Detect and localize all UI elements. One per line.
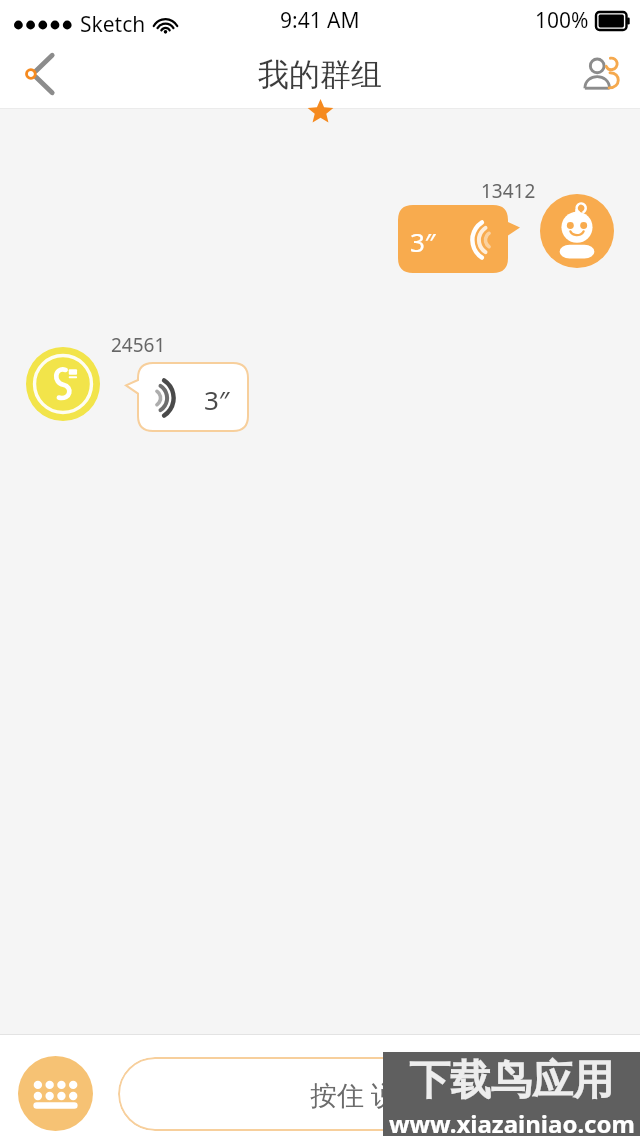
button[interactable]: Keyboard xyxy=(18,1056,93,1131)
button[interactable]: 按住 说话 xyxy=(118,1057,618,1131)
staticText: 13412 xyxy=(481,178,536,204)
button[interactable]: Group members xyxy=(574,45,632,103)
button[interactable]: Avatar 13412 xyxy=(540,194,614,268)
staticText: 3″ xyxy=(204,382,230,417)
staticText: 3″ xyxy=(410,224,436,259)
staticText: 按住 说话 xyxy=(310,1076,426,1113)
staticText: 下载鸟应用 xyxy=(409,1055,614,1107)
button[interactable]: 3″ xyxy=(398,205,520,273)
button[interactable]: Avatar 24561 xyxy=(26,347,100,421)
staticText: 9:41 AM xyxy=(280,6,360,35)
staticText: 100% xyxy=(535,6,589,35)
button[interactable]: Back xyxy=(6,44,66,104)
staticText: 24561 xyxy=(111,332,166,358)
button[interactable]: 3″ xyxy=(126,363,248,431)
staticText: www.xiazainiao.com xyxy=(389,1107,635,1136)
staticText: 我的群组 xyxy=(258,55,382,94)
staticText: Sketch xyxy=(80,10,146,39)
